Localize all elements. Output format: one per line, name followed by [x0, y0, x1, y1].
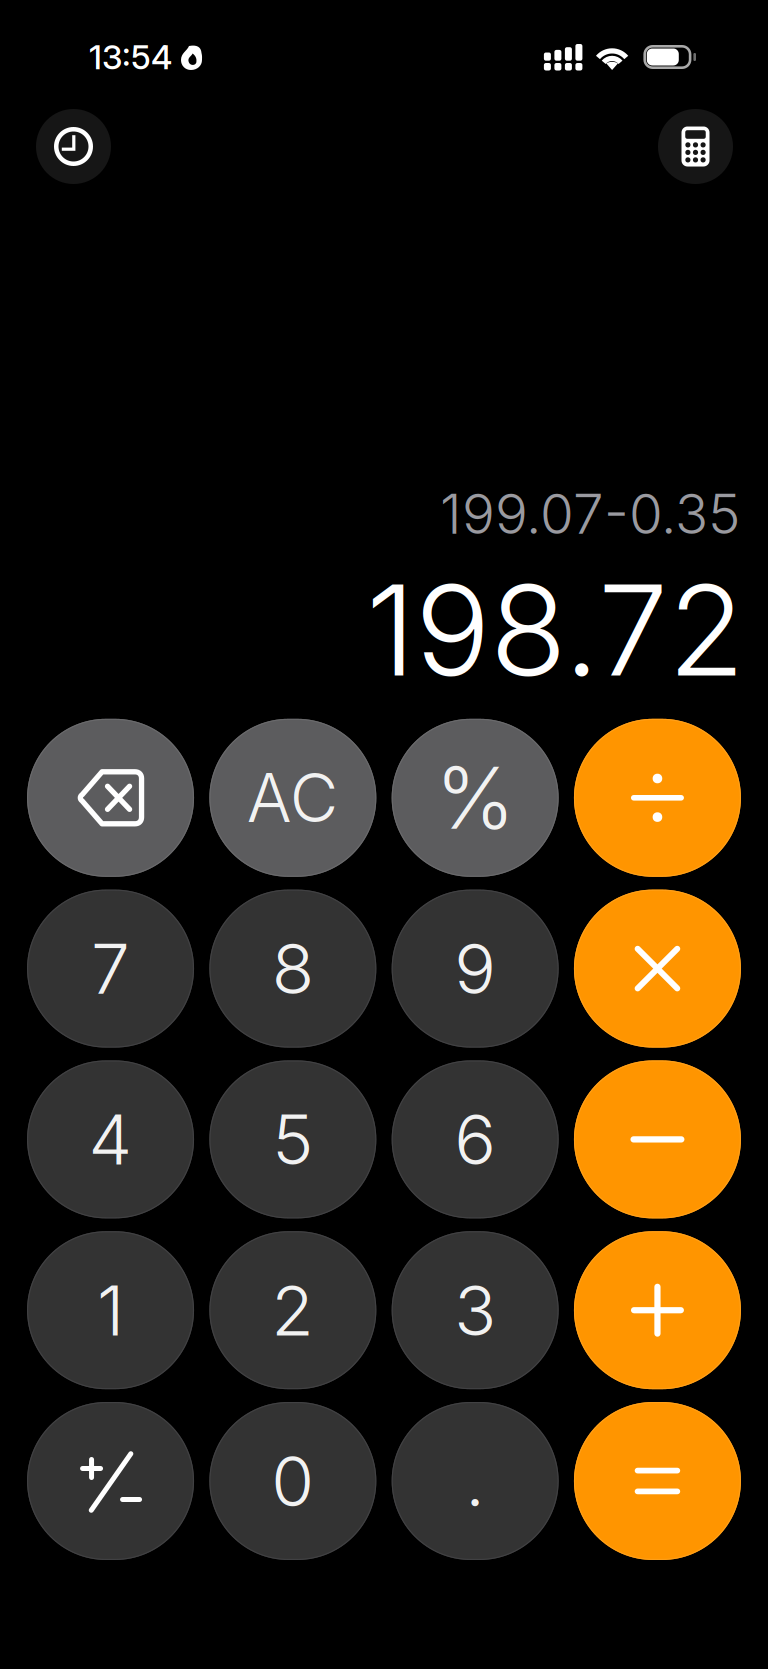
staticText: 13:54 — [89, 37, 172, 77]
button[interactable]: Minus — [574, 1060, 741, 1218]
button[interactable]: Plus minus — [27, 1402, 194, 1560]
staticText: 8 — [272, 927, 314, 1011]
button[interactable]: Plus — [574, 1231, 741, 1389]
staticText: 2 — [271, 1268, 314, 1352]
staticText: % — [435, 746, 515, 849]
button[interactable]: Percent — [392, 719, 559, 877]
staticText: 0 — [271, 1439, 314, 1523]
button[interactable]: 2 — [209, 1231, 376, 1389]
button[interactable]: Divide — [574, 719, 741, 877]
button[interactable]: 6 — [392, 1060, 559, 1218]
button[interactable]: 9 — [392, 890, 559, 1048]
staticText: 5 — [272, 1097, 313, 1181]
button[interactable]: Delete — [27, 719, 194, 877]
button[interactable]: 5 — [209, 1060, 376, 1218]
staticText: 3 — [454, 1268, 496, 1352]
staticText: 198.72 — [366, 554, 745, 706]
staticText: . — [465, 1439, 485, 1523]
button[interactable]: Decimal point — [392, 1402, 559, 1560]
staticText: 4 — [89, 1097, 133, 1181]
staticText: 9 — [454, 927, 496, 1011]
button[interactable]: 4 — [27, 1060, 194, 1218]
button[interactable]: History — [36, 109, 111, 184]
button[interactable]: 8 — [209, 890, 376, 1048]
button[interactable]: 0 — [209, 1402, 376, 1560]
staticText: 199.07-0.35 — [440, 481, 740, 547]
button[interactable]: Multiply — [574, 890, 741, 1048]
button[interactable]: 3 — [392, 1231, 559, 1389]
button[interactable]: Equals — [574, 1402, 741, 1560]
staticText: AC — [247, 757, 339, 838]
button[interactable]: 7 — [27, 890, 194, 1048]
staticText: 6 — [454, 1097, 496, 1181]
staticText: 1 — [97, 1268, 124, 1352]
button[interactable]: All clear — [209, 719, 376, 877]
button[interactable]: 1 — [27, 1231, 194, 1389]
button[interactable]: Calculator — [658, 109, 733, 184]
staticText: 7 — [91, 927, 130, 1011]
